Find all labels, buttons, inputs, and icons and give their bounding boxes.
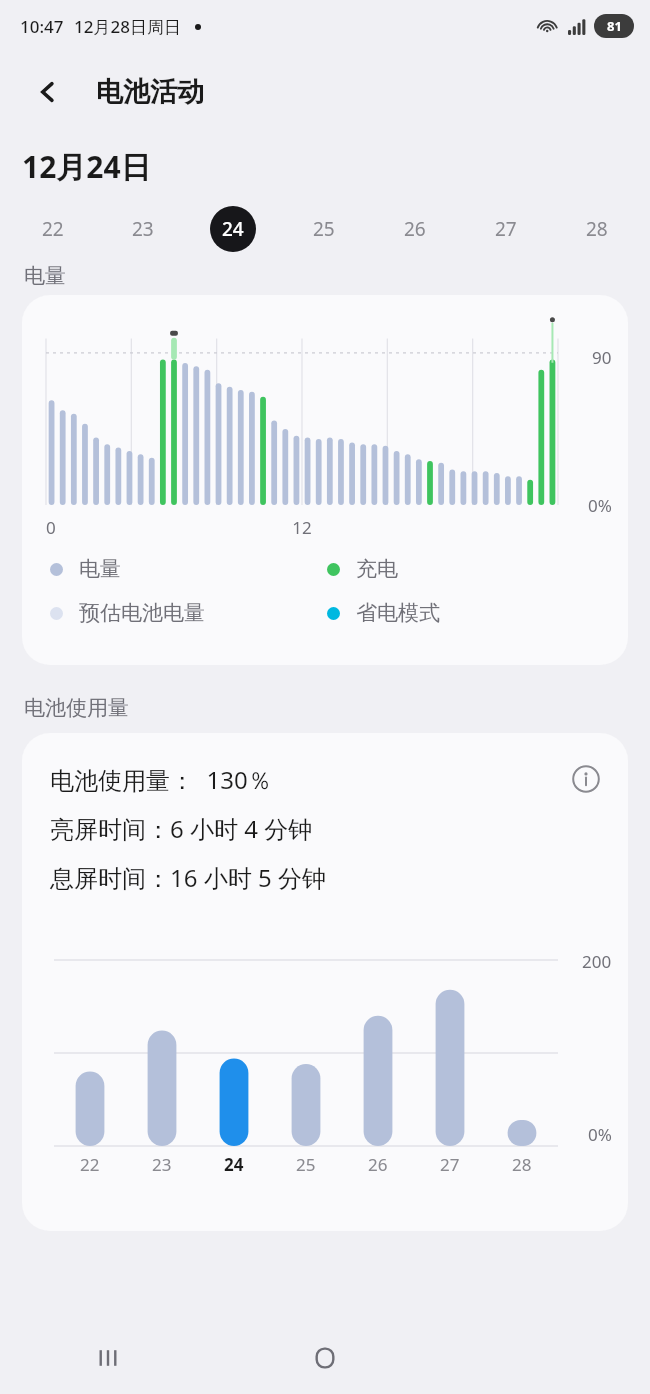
button[interactable]: 26 [369, 203, 460, 255]
staticText: 0% [588, 494, 612, 517]
staticText: 12月24日 [22, 146, 151, 187]
staticText: 28 [512, 1153, 532, 1176]
staticText: 90 [592, 346, 612, 369]
button[interactable]: 23 [98, 203, 188, 255]
staticText: 22 [42, 216, 64, 242]
staticText: 22 [80, 1153, 100, 1176]
staticText: 省电模式 [356, 600, 440, 626]
button[interactable]: 24 [188, 203, 278, 255]
staticText: 12月28日周日 [74, 15, 181, 38]
button[interactable]: Back [20, 64, 76, 120]
staticText: 预估电池电量 [79, 600, 205, 626]
button[interactable]: Info [22, 733, 628, 1231]
staticText: 28 [586, 216, 608, 242]
staticText: 81 [607, 17, 622, 35]
staticText: 电池活动 [96, 75, 204, 109]
staticText: 电池使用量： 130％ [50, 763, 272, 796]
staticText: 0% [588, 1123, 612, 1146]
staticText: 200 [582, 950, 612, 973]
button[interactable]: Info [564, 757, 608, 801]
staticText: 电池使用量 [24, 695, 129, 721]
staticText: 23 [132, 216, 154, 242]
staticText: 25 [296, 1153, 316, 1176]
staticText: 电量 [79, 556, 121, 582]
staticText: 23 [152, 1153, 172, 1176]
button[interactable]: 28 [551, 203, 642, 255]
button[interactable]: 25 [278, 203, 369, 255]
staticText: 电量 [24, 263, 66, 289]
button[interactable]: Home [216, 1322, 433, 1394]
staticText: 息屏时间：16 小时 5 分钟 [50, 861, 326, 894]
staticText: 24 [224, 1153, 244, 1176]
staticText: 亮屏时间：6 小时 4 分钟 [50, 812, 313, 845]
button[interactable]: 27 [460, 203, 551, 255]
staticText: 27 [495, 216, 517, 242]
staticText: 10:47 [20, 15, 64, 38]
staticText: 24 [222, 216, 244, 242]
button[interactable]: Recents [0, 1322, 216, 1394]
staticText: 26 [368, 1153, 388, 1176]
staticText: 充电 [356, 556, 398, 582]
staticText: 27 [440, 1153, 460, 1176]
staticText: 26 [404, 216, 426, 242]
button[interactable]: 90 [22, 295, 628, 665]
staticText: 25 [313, 216, 335, 242]
staticText: 12 [292, 516, 312, 539]
button[interactable]: 22 [8, 203, 98, 255]
staticText: 0 [46, 516, 56, 539]
